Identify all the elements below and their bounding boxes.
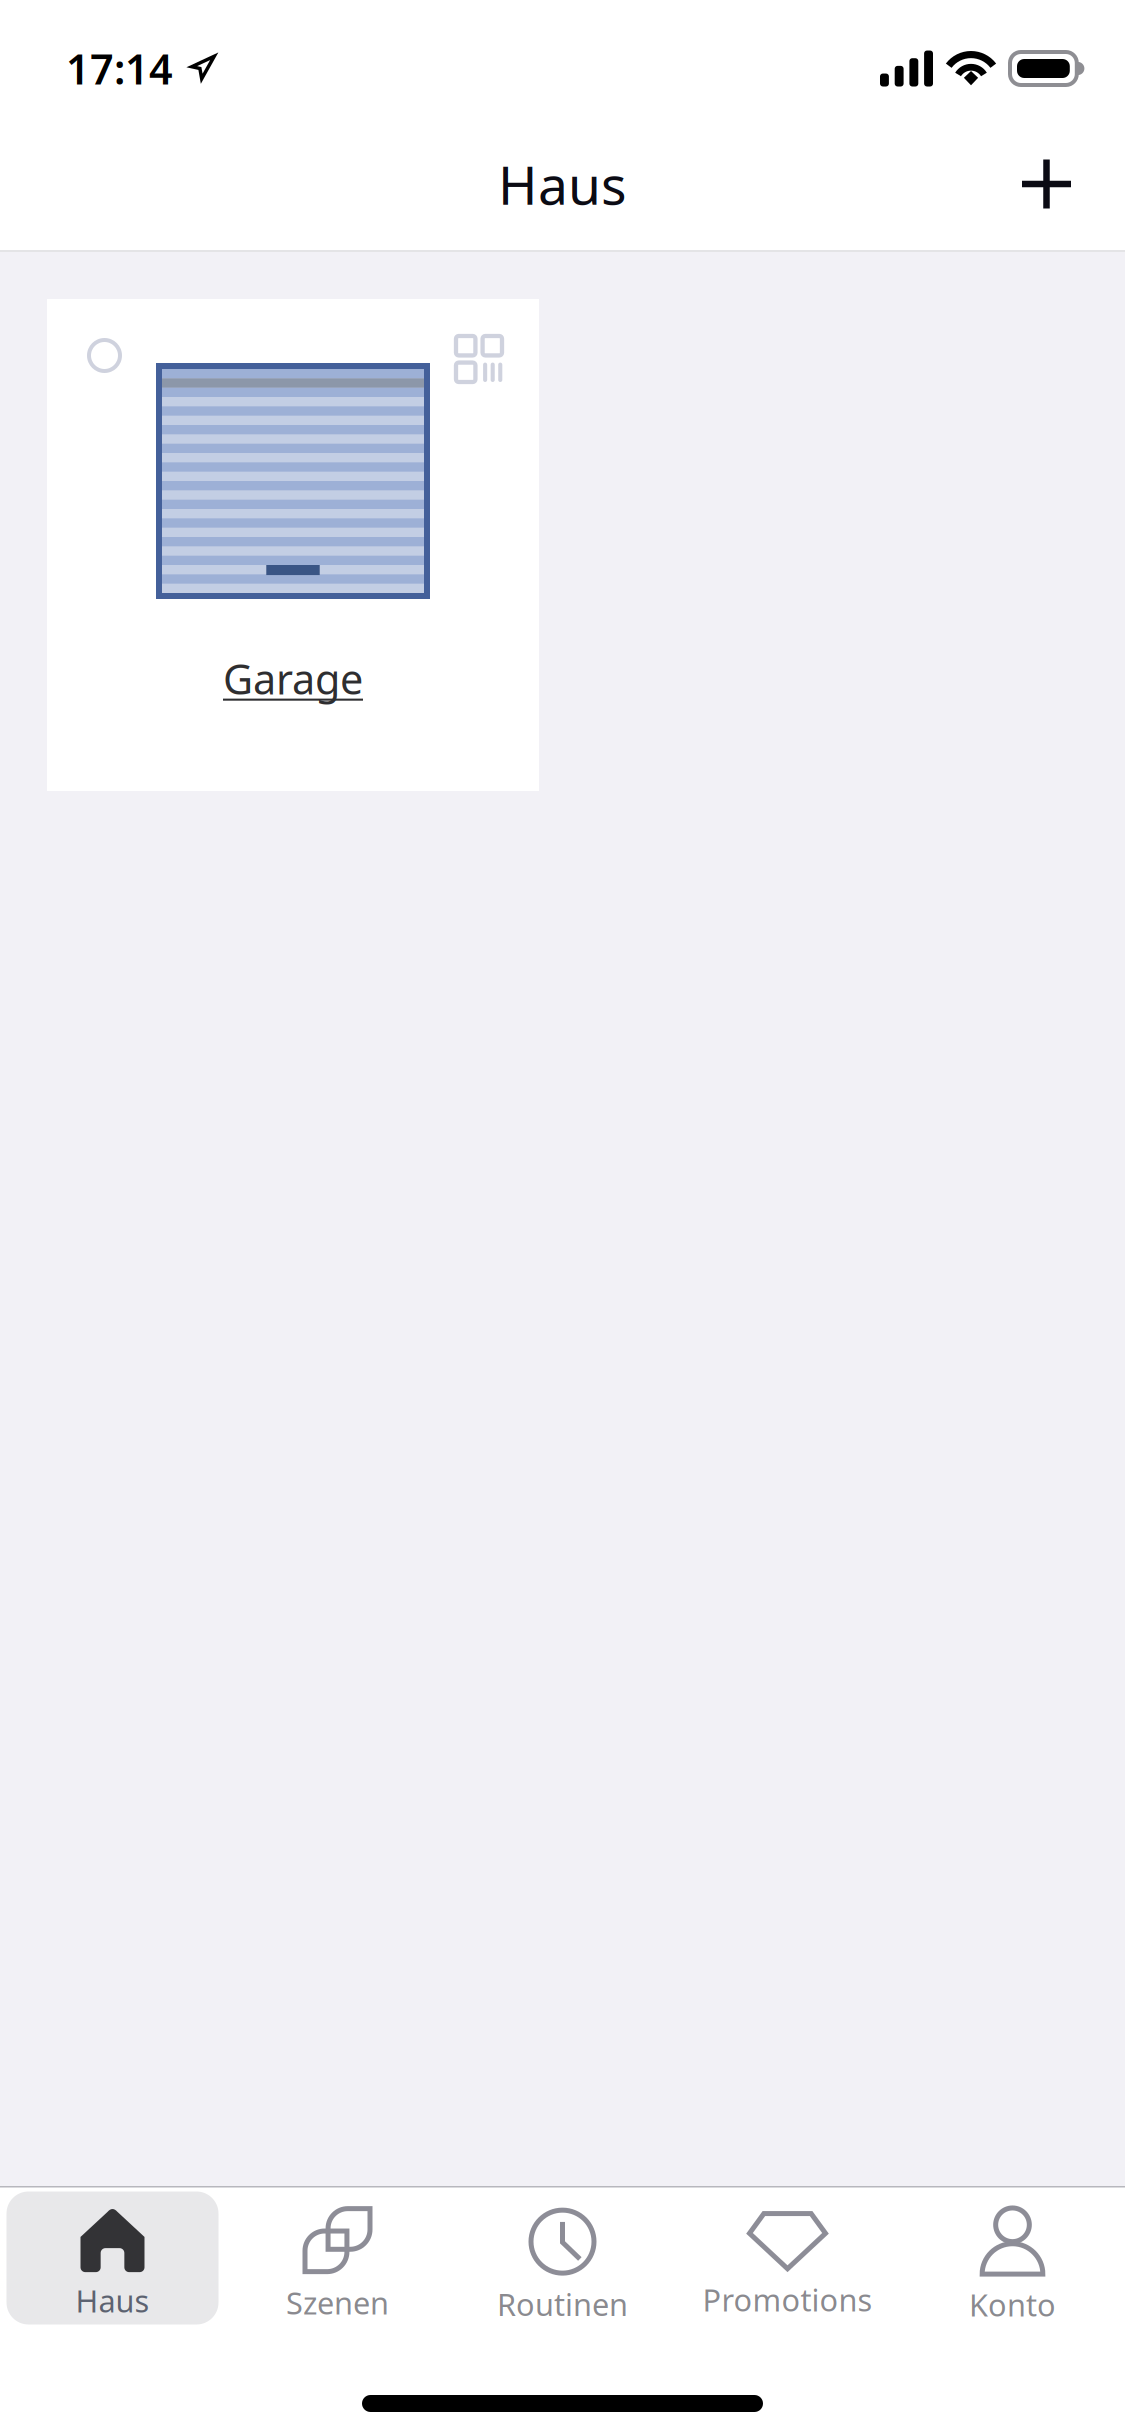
staticText: Routinen — [497, 2284, 628, 2324]
button[interactable]: Promotions — [675, 2191, 900, 2324]
button[interactable]: Gerät hinzufügen — [1002, 139, 1091, 228]
button[interactable]: Garage — [47, 299, 539, 791]
staticText: Haus — [498, 149, 627, 219]
staticText: Konto — [969, 2284, 1056, 2325]
staticText: Haus — [75, 2280, 149, 2321]
staticText: 17:14 — [66, 41, 173, 96]
button[interactable]: Szenen — [225, 2191, 450, 2324]
button[interactable]: Konto — [900, 2191, 1125, 2324]
staticText: Szenen — [286, 2282, 389, 2323]
staticText: Garage — [223, 651, 363, 706]
button[interactable]: Haus — [0, 2191, 225, 2324]
button[interactable]: Routinen — [450, 2191, 675, 2324]
staticText: Promotions — [702, 2279, 872, 2320]
